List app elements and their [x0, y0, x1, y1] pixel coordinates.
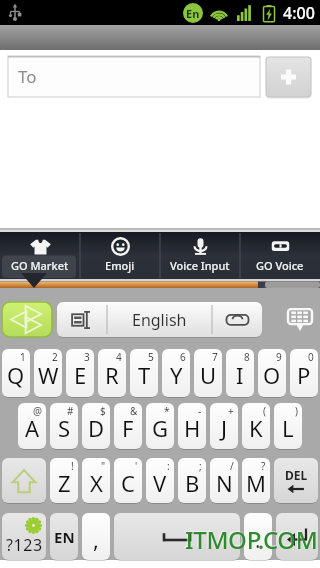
button[interactable]: M: [242, 458, 270, 503]
button[interactable]: V: [146, 458, 174, 503]
button[interactable]: O: [258, 349, 286, 397]
button[interactable]: GO Market: [0, 232, 80, 279]
button[interactable]: Q: [2, 349, 30, 397]
button[interactable]: Shift: [2, 458, 46, 503]
staticText: I: [236, 360, 244, 390]
staticText: 7: [212, 350, 218, 364]
staticText: M: [246, 468, 266, 498]
button[interactable]: I: [226, 349, 254, 397]
button[interactable]: GO Voice: [240, 232, 320, 279]
staticText: EN: [54, 527, 75, 547]
button[interactable]: Emoji: [80, 232, 160, 279]
button[interactable]: EN: [50, 513, 78, 560]
button[interactable]: W: [34, 349, 62, 397]
button[interactable]: To: [8, 56, 260, 97]
button[interactable]: X: [82, 458, 110, 503]
button[interactable]: Enter: [276, 513, 318, 560]
staticText: F: [122, 413, 134, 443]
staticText: U: [200, 360, 217, 390]
staticText: X: [90, 468, 103, 498]
button[interactable]: R: [98, 349, 126, 397]
staticText: ,: [93, 524, 99, 554]
button[interactable]: English: [107, 302, 212, 337]
button[interactable]: S: [50, 403, 78, 449]
staticText: ': [135, 459, 138, 473]
staticText: T: [138, 360, 151, 390]
staticText: E: [74, 360, 87, 390]
staticText: DEL: [285, 467, 308, 483]
button[interactable]: ,: [82, 513, 110, 560]
button[interactable]: L: [274, 403, 302, 449]
staticText: G: [152, 413, 169, 443]
button[interactable]: P: [290, 349, 318, 397]
staticText: ITMOP.COM: [184, 522, 317, 555]
staticText: N: [216, 468, 233, 498]
button[interactable]: Delete: [274, 458, 318, 503]
staticText: -: [198, 404, 202, 418]
button[interactable]: T: [130, 349, 158, 397]
staticText: Voice Input: [170, 258, 230, 273]
button[interactable]: D: [82, 403, 110, 449]
staticText: P: [297, 360, 311, 390]
staticText: !: [71, 459, 74, 473]
staticText: ITMOP.COM: [185, 523, 318, 556]
button[interactable]: A: [18, 403, 46, 449]
button[interactable]: Add recipient: [266, 57, 311, 97]
button[interactable]: Space: [114, 513, 240, 560]
staticText: ?123: [6, 534, 43, 556]
staticText: ): [295, 404, 298, 418]
button[interactable]: F: [114, 403, 142, 449]
staticText: 5: [148, 350, 154, 364]
staticText: Q: [7, 360, 25, 390]
staticText: GO Voice: [256, 258, 304, 273]
staticText: English: [132, 309, 187, 331]
button[interactable]: Switch keyboard: [212, 302, 262, 337]
button[interactable]: Z: [50, 458, 78, 503]
button[interactable]: Hide keyboard: [282, 302, 318, 337]
staticText: +: [228, 404, 234, 418]
staticText: En: [186, 6, 200, 21]
button[interactable]: B: [178, 458, 206, 503]
staticText: V: [153, 468, 167, 498]
staticText: #: [67, 404, 74, 418]
button[interactable]: K: [242, 403, 270, 449]
staticText: /: [230, 459, 234, 473]
staticText: 0: [308, 350, 314, 364]
staticText: H: [184, 413, 201, 443]
staticText: *: [164, 404, 170, 418]
staticText: 2: [52, 350, 58, 364]
staticText: (: [263, 404, 266, 418]
button[interactable]: Voice Input: [160, 232, 240, 279]
staticText: J: [221, 413, 228, 443]
staticText: 9: [276, 350, 282, 364]
staticText: R: [105, 360, 119, 390]
button[interactable]: Y: [162, 349, 190, 397]
staticText: 3: [84, 350, 90, 364]
button[interactable]: U: [194, 349, 222, 397]
staticText: O: [263, 360, 281, 390]
staticText: &: [130, 404, 138, 418]
button[interactable]: G: [146, 403, 174, 449]
staticText: W: [38, 360, 59, 390]
button[interactable]: Symbols and settings: [2, 513, 46, 560]
staticText: @: [33, 404, 42, 418]
button[interactable]: J: [210, 403, 238, 449]
staticText: S: [58, 413, 71, 443]
button[interactable]: C: [114, 458, 142, 503]
staticText: ?: [261, 459, 266, 473]
staticText: 4: [116, 350, 122, 364]
staticText: 6: [180, 350, 186, 364]
staticText: :: [167, 459, 170, 473]
staticText: A: [25, 413, 40, 443]
button[interactable]: E: [66, 349, 94, 397]
button[interactable]: .: [244, 513, 272, 560]
button[interactable]: H: [178, 403, 206, 449]
staticText: Y: [170, 360, 183, 390]
staticText: L: [282, 413, 294, 443]
button[interactable]: Input mode: [57, 302, 107, 337]
staticText: C: [121, 468, 135, 498]
staticText: To: [18, 65, 37, 88]
staticText: D: [88, 413, 105, 443]
button[interactable]: GO Keyboard settings: [2, 302, 52, 337]
button[interactable]: N: [210, 458, 238, 503]
